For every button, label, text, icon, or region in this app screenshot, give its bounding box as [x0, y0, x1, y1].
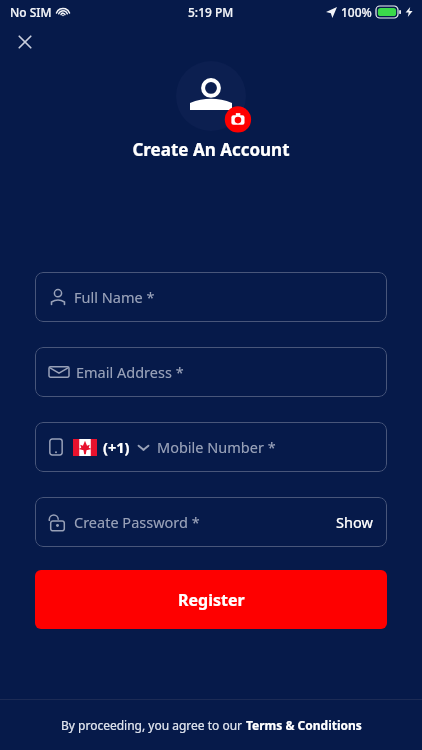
staticText: Create Password *: [74, 512, 200, 532]
staticText: Mobile Number *: [157, 437, 276, 457]
staticText: No SIM: [10, 4, 52, 20]
button[interactable]: Email Address *: [35, 347, 387, 397]
staticText: 5:19 PM: [188, 4, 234, 20]
button[interactable]: By proceeding, you agree to our: [61, 717, 362, 733]
staticText: 100%: [341, 4, 372, 20]
staticText: Register: [178, 589, 245, 611]
button[interactable]: Change profile photo: [176, 61, 246, 131]
button[interactable]: Register: [35, 570, 387, 629]
staticText: Full Name *: [74, 287, 155, 307]
staticText: Create An Account: [0, 138, 422, 161]
button[interactable]: Show: [336, 512, 373, 532]
staticText: Terms & Conditions: [246, 717, 362, 733]
staticText: Show: [336, 512, 373, 532]
button[interactable]: Create Password *: [35, 497, 387, 547]
staticText: Email Address *: [76, 362, 184, 382]
button[interactable]: (+1): [35, 422, 387, 472]
staticText: By proceeding, you agree to our: [61, 717, 246, 733]
button[interactable]: Full Name *: [35, 272, 387, 322]
staticText: (+1): [103, 437, 130, 457]
button[interactable]: Close: [13, 30, 37, 54]
